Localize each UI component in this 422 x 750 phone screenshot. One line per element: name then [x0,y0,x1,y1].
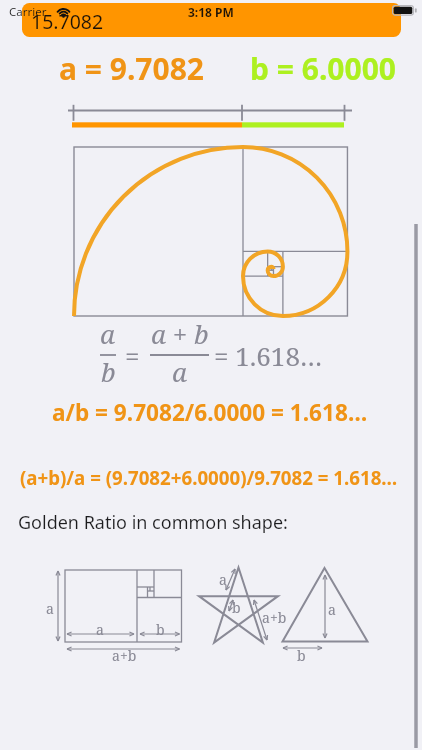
staticText: a [100,316,116,351]
staticText: 15.7082 [31,8,104,35]
staticText: a [46,599,54,618]
staticText: b = 6.0000 [250,48,396,89]
staticText: a [328,600,336,619]
staticText: 3:18 PM [188,4,234,20]
staticText: a + b [151,316,209,351]
staticText: a = 9.7082 [59,48,204,89]
staticText: b [101,354,116,389]
button[interactable]: 15.7082 [22,3,401,37]
staticText: b [297,646,306,665]
staticText: Golden Ratio in common shape: [18,510,288,535]
staticText: a [96,620,104,639]
staticText: a+b [262,608,287,627]
staticText: Carrier [9,4,47,20]
staticText: a+b [112,646,137,665]
staticText: a [219,570,227,589]
staticText: a [172,354,188,389]
staticText: b [232,598,241,617]
staticText: a/b = 9.7082/6.0000 = 1.618… [52,397,368,428]
staticText: = [125,338,140,373]
staticText: = 1.618… [214,338,323,373]
other: Battery [392,5,418,16]
staticText: b [156,620,165,639]
staticText: (a+b)/a = (9.7082+6.0000)/9.7082 = 1.618… [20,465,398,490]
